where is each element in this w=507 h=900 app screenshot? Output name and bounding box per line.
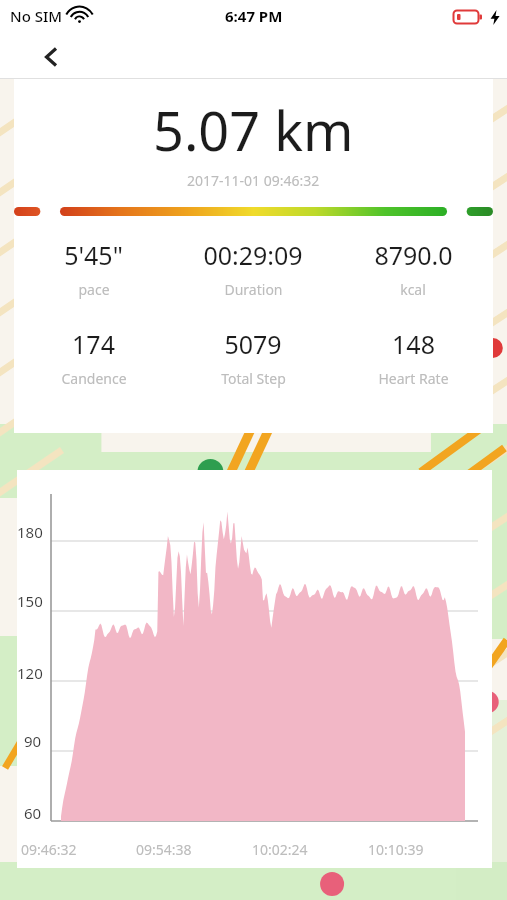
staticText: 120: [17, 663, 43, 683]
staticText: 5079: [224, 327, 282, 361]
staticText: Total Step: [221, 369, 286, 388]
staticText: pace: [78, 280, 110, 299]
staticText: 5.07 km: [153, 93, 354, 167]
button[interactable]: 174: [14, 327, 173, 388]
staticText: Duration: [224, 280, 283, 299]
staticText: 8790.0: [374, 238, 453, 272]
staticText: 6:47 PM: [225, 6, 283, 26]
staticText: 10:10:39: [368, 840, 484, 859]
staticText: Candence: [61, 369, 127, 388]
staticText: 00:29:09: [203, 238, 303, 272]
staticText: 174: [72, 327, 115, 361]
staticText: 60: [24, 803, 42, 823]
button[interactable]: Back: [30, 37, 70, 77]
staticText: 150: [17, 591, 43, 611]
staticText: 5'45": [64, 238, 123, 272]
staticText: 90: [24, 731, 42, 751]
button[interactable]: 5079: [173, 327, 333, 388]
staticText: No SIM: [10, 6, 63, 26]
staticText: 10:02:24: [252, 840, 368, 859]
button[interactable]: 180: [17, 470, 492, 868]
staticText: 148: [392, 327, 435, 361]
staticText: 2017-11-01 09:46:32: [187, 171, 320, 190]
staticText: 09:54:38: [136, 840, 252, 859]
staticText: 09:46:32: [21, 840, 136, 859]
button[interactable]: 8790.0: [333, 238, 493, 299]
button[interactable]: 00:29:09: [173, 238, 333, 299]
staticText: kcal: [400, 280, 426, 299]
staticText: Heart Rate: [378, 369, 449, 388]
button[interactable]: 148: [333, 327, 493, 388]
staticText: 180: [17, 522, 43, 542]
button[interactable]: 5'45": [14, 238, 173, 299]
